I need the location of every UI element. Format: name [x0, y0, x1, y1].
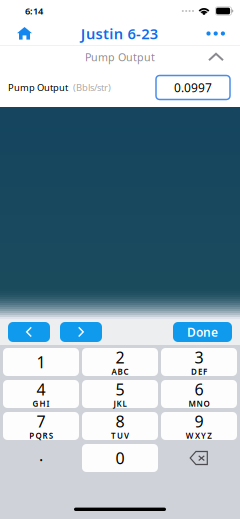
staticText: 0.0997 [174, 79, 212, 95]
button[interactable]: Delete [161, 444, 237, 472]
button[interactable]: 0.0997 [156, 75, 230, 99]
staticText: GHI [32, 398, 50, 409]
staticText: . [39, 444, 43, 466]
button[interactable]: 0 [82, 444, 158, 472]
staticText: 1 [36, 351, 45, 373]
staticText: 9 [194, 411, 203, 432]
staticText: JKL [113, 398, 127, 409]
button[interactable]: More options [196, 23, 240, 44]
button[interactable]: Previous field [8, 322, 50, 342]
staticText: 3 [194, 347, 203, 368]
staticText: Pump Output [85, 50, 155, 64]
staticText: 5 [115, 379, 124, 400]
staticText: 2 [115, 347, 124, 368]
staticText: 7 [36, 411, 45, 432]
button[interactable]: 2 [82, 348, 158, 376]
button[interactable]: 8 [82, 412, 158, 440]
staticText: Justin 6-23 [81, 24, 158, 43]
staticText: ABC [111, 366, 129, 377]
button[interactable]: 7 [3, 412, 79, 440]
button[interactable]: Done [173, 322, 232, 342]
button[interactable]: 9 [161, 412, 237, 440]
button[interactable]: Decimal point [3, 444, 79, 472]
button[interactable]: Home [0, 23, 42, 44]
staticText: 0 [115, 447, 124, 469]
button[interactable]: Next field [60, 322, 102, 342]
button[interactable]: 6 [161, 380, 237, 408]
staticText: MNO [188, 398, 210, 409]
button[interactable]: 1 [3, 348, 79, 376]
button[interactable]: 5 [82, 380, 158, 408]
staticText: DEF [191, 366, 207, 377]
staticText: TUV [111, 430, 129, 441]
staticText: 8 [115, 411, 124, 432]
staticText: 6 [194, 379, 203, 400]
staticText: Done [187, 324, 218, 340]
staticText: Pump Output [8, 81, 68, 94]
button[interactable]: 4 [3, 380, 79, 408]
staticText: WXYZ [186, 430, 212, 441]
staticText: 4 [36, 379, 45, 400]
staticText: PQRS [29, 430, 53, 441]
staticText: 6:14 [25, 5, 43, 17]
button[interactable]: 3 [161, 348, 237, 376]
button[interactable]: Pump Output [0, 46, 240, 68]
staticText: (Bbls/str) [73, 81, 111, 94]
